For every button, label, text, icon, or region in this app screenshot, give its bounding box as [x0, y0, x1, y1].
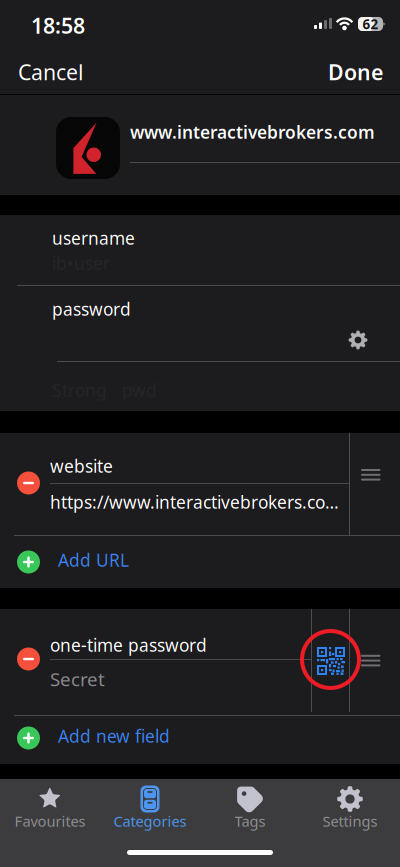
button[interactable]: Cancel [18, 58, 108, 86]
staticText: Secret [50, 667, 105, 691]
staticText: Favourites [14, 811, 85, 831]
button[interactable]: Remove website [17, 471, 40, 494]
staticText: username [52, 226, 135, 249]
button[interactable]: Tags [200, 779, 300, 835]
staticText: website [50, 454, 113, 477]
staticText: Add new field [58, 724, 170, 747]
button[interactable]: Settings [300, 779, 400, 835]
staticText: www.interactivebrokers.com [130, 120, 375, 143]
staticText: password [52, 297, 131, 320]
button[interactable]: Password settings [348, 330, 367, 349]
button[interactable]: Favourites [0, 779, 100, 835]
button[interactable]: Add URL [14, 536, 400, 588]
staticText: Add URL [58, 548, 129, 571]
button[interactable]: Reorder one-time password [361, 655, 380, 666]
button[interactable]: Add new field [14, 716, 400, 764]
staticText: Tags [234, 811, 265, 831]
staticText: one-time password [50, 633, 207, 656]
staticText: https://www.interactivebrokers.com/s… [50, 490, 340, 513]
button[interactable]: Scan QR code [317, 647, 345, 675]
staticText: Done [328, 58, 383, 86]
button[interactable]: Reorder website [361, 469, 380, 481]
staticText: Cancel [18, 58, 84, 86]
button[interactable]: Done [293, 58, 383, 86]
staticText: 62 [362, 15, 378, 33]
staticText: 18:58 [31, 11, 85, 40]
staticText: Categories [113, 811, 186, 831]
staticText: Settings [322, 811, 377, 831]
button[interactable]: Remove one-time password [17, 647, 40, 670]
button[interactable]: Categories [100, 779, 200, 835]
